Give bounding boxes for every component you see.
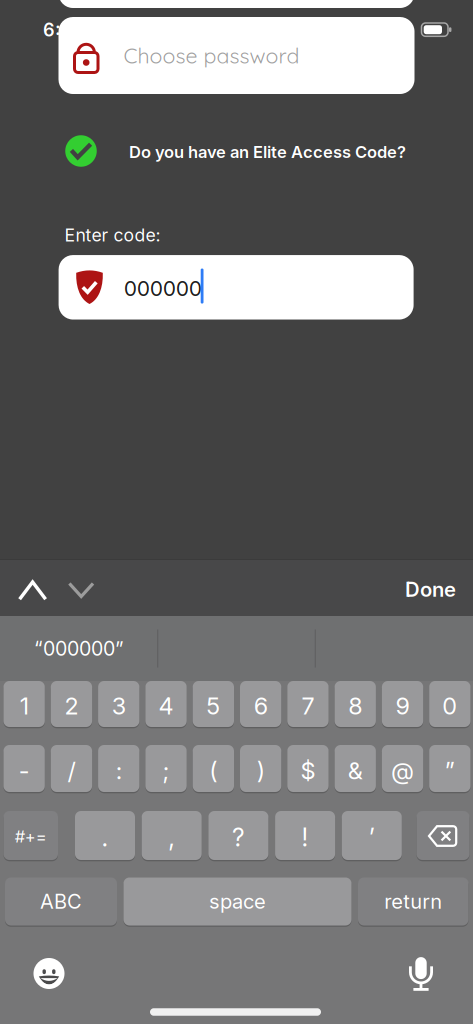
staticText: & (348, 756, 363, 785)
staticText: 7 (301, 692, 314, 720)
button[interactable]: ” (429, 745, 470, 792)
button[interactable]: ( (193, 745, 234, 792)
button[interactable]: 3 (98, 681, 139, 727)
staticText: Do you have an Elite Access Code? (129, 142, 406, 162)
button[interactable]: 4 (145, 681, 187, 727)
staticText: 5 (206, 692, 220, 720)
staticText: ; (162, 756, 169, 785)
button[interactable]: “000000” (0, 616, 157, 681)
staticText: 0 (442, 692, 457, 720)
staticText: #+= (15, 826, 47, 846)
button[interactable]: Previous field (16, 576, 50, 604)
button[interactable]: & (335, 745, 376, 792)
staticText: , (168, 823, 175, 852)
button[interactable]: Choose password (58, 17, 414, 94)
staticText: Enter code: (64, 224, 160, 246)
staticText: @ (391, 756, 414, 785)
staticText: . (101, 823, 108, 852)
staticText: ” (445, 756, 455, 785)
staticText: $ (300, 756, 315, 785)
button[interactable]: ’ (342, 811, 402, 860)
button[interactable]: #+= (3, 811, 58, 860)
staticText: : (116, 756, 122, 785)
button[interactable]: / (51, 745, 92, 792)
button[interactable]: 9 (382, 681, 423, 727)
staticText: 000000 (124, 275, 202, 301)
button[interactable]: $ (287, 745, 329, 792)
button[interactable]: ABC (5, 877, 117, 925)
button[interactable]: Done (356, 577, 456, 602)
button[interactable]: return (358, 877, 468, 925)
button[interactable]: 0 (429, 681, 470, 727)
button[interactable]: Next field (64, 576, 98, 604)
staticText: 3 (112, 692, 126, 720)
staticText: 1 (20, 692, 29, 720)
staticText: ( (209, 756, 217, 785)
button[interactable]: space (123, 877, 351, 925)
button[interactable]: Delete (416, 811, 469, 860)
staticText: ’ (369, 823, 375, 852)
button[interactable]: 2 (51, 681, 92, 727)
button[interactable]: - (3, 745, 45, 792)
staticText: “000000” (34, 637, 124, 660)
staticText: 4 (158, 692, 173, 720)
staticText: Choose password (123, 42, 299, 69)
staticText: ABC (40, 889, 82, 914)
staticText: 8 (348, 692, 362, 720)
button[interactable]: , (142, 811, 202, 860)
button[interactable]: Dictation (408, 956, 434, 994)
button[interactable]: ? (208, 811, 268, 860)
button[interactable]: @ (382, 745, 423, 792)
button[interactable]: Emoji (32, 956, 66, 990)
button[interactable]: 8 (335, 681, 376, 727)
button[interactable]: 1 (3, 681, 45, 727)
staticText: 9 (395, 692, 409, 720)
button[interactable]: Do you have an Elite Access Code? (55, 130, 455, 172)
button[interactable]: ! (275, 811, 335, 860)
staticText: return (384, 889, 442, 914)
button[interactable]: 7 (287, 681, 329, 727)
button[interactable]: . (75, 811, 135, 860)
staticText: / (67, 756, 75, 785)
button[interactable]: 6 (240, 681, 281, 727)
button[interactable]: ; (145, 745, 187, 792)
staticText: Done (405, 577, 456, 602)
staticText: 2 (64, 692, 78, 720)
staticText: ? (232, 823, 245, 852)
button[interactable]: : (98, 745, 139, 792)
staticText: space (209, 889, 266, 914)
staticText: 6:41 (43, 19, 81, 41)
staticText: ! (302, 823, 309, 852)
button[interactable]: 5 (193, 681, 234, 727)
staticText: - (19, 756, 30, 785)
button[interactable]: 000000 (59, 255, 414, 320)
staticText: ) (257, 756, 265, 785)
button[interactable]: ) (240, 745, 281, 792)
staticText: 6 (254, 692, 268, 720)
